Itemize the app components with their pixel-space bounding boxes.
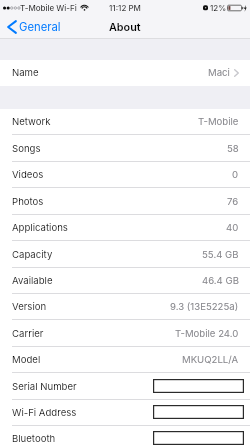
staticText: Serial Number	[12, 381, 77, 393]
staticText: 58	[227, 143, 239, 155]
staticText: Wi-Fi Address	[12, 407, 77, 419]
button[interactable]: Version	[0, 294, 250, 320]
staticText: Available	[12, 275, 53, 287]
staticText: About	[109, 21, 141, 34]
staticText: 9.3 (13E5225a)	[170, 301, 239, 313]
staticText: Name	[12, 67, 39, 79]
staticText: Version	[12, 301, 47, 313]
button[interactable]: Videos	[0, 162, 250, 188]
button[interactable]: Carrier	[0, 320, 250, 347]
staticText: Maci	[208, 67, 230, 79]
button[interactable]: Photos	[0, 188, 250, 215]
staticText: T-Mobile 24.0	[175, 328, 239, 340]
staticText: T-Mobile Wi-Fi	[20, 3, 77, 13]
staticText: Network	[12, 116, 51, 128]
staticText: Applications	[12, 222, 68, 234]
staticText: Videos	[12, 169, 44, 181]
button[interactable]: Available	[0, 268, 250, 294]
staticText: 0	[232, 169, 239, 181]
staticText: MKUQ2LL/A	[182, 354, 239, 366]
button[interactable]: Bluetooth	[0, 426, 250, 445]
staticText: 46.4 GB	[202, 275, 239, 287]
button[interactable]: Songs	[0, 135, 250, 162]
staticText: T-Mobile	[198, 116, 239, 128]
button[interactable]: Serial Number	[0, 373, 250, 400]
staticText: Model	[12, 354, 41, 366]
staticText: Bluetooth	[12, 433, 56, 445]
staticText: Photos	[12, 196, 44, 208]
button[interactable]: Network	[0, 109, 250, 135]
staticText: 11:12 PM	[109, 3, 141, 13]
staticText: Songs	[12, 143, 41, 155]
button[interactable]: Capacity	[0, 241, 250, 268]
button[interactable]: Name	[0, 60, 250, 86]
button[interactable]: Wi-Fi Address	[0, 400, 250, 426]
staticText: General	[19, 20, 61, 34]
staticText: Carrier	[12, 328, 44, 340]
staticText: 12%	[210, 3, 227, 13]
staticText: 55.4 GB	[202, 249, 239, 261]
staticText: 76	[227, 196, 239, 208]
button[interactable]: Model	[0, 347, 250, 373]
staticText: 40	[226, 222, 239, 234]
button[interactable]: General	[0, 20, 67, 34]
staticText: Capacity	[12, 249, 53, 261]
button[interactable]: Applications	[0, 215, 250, 241]
